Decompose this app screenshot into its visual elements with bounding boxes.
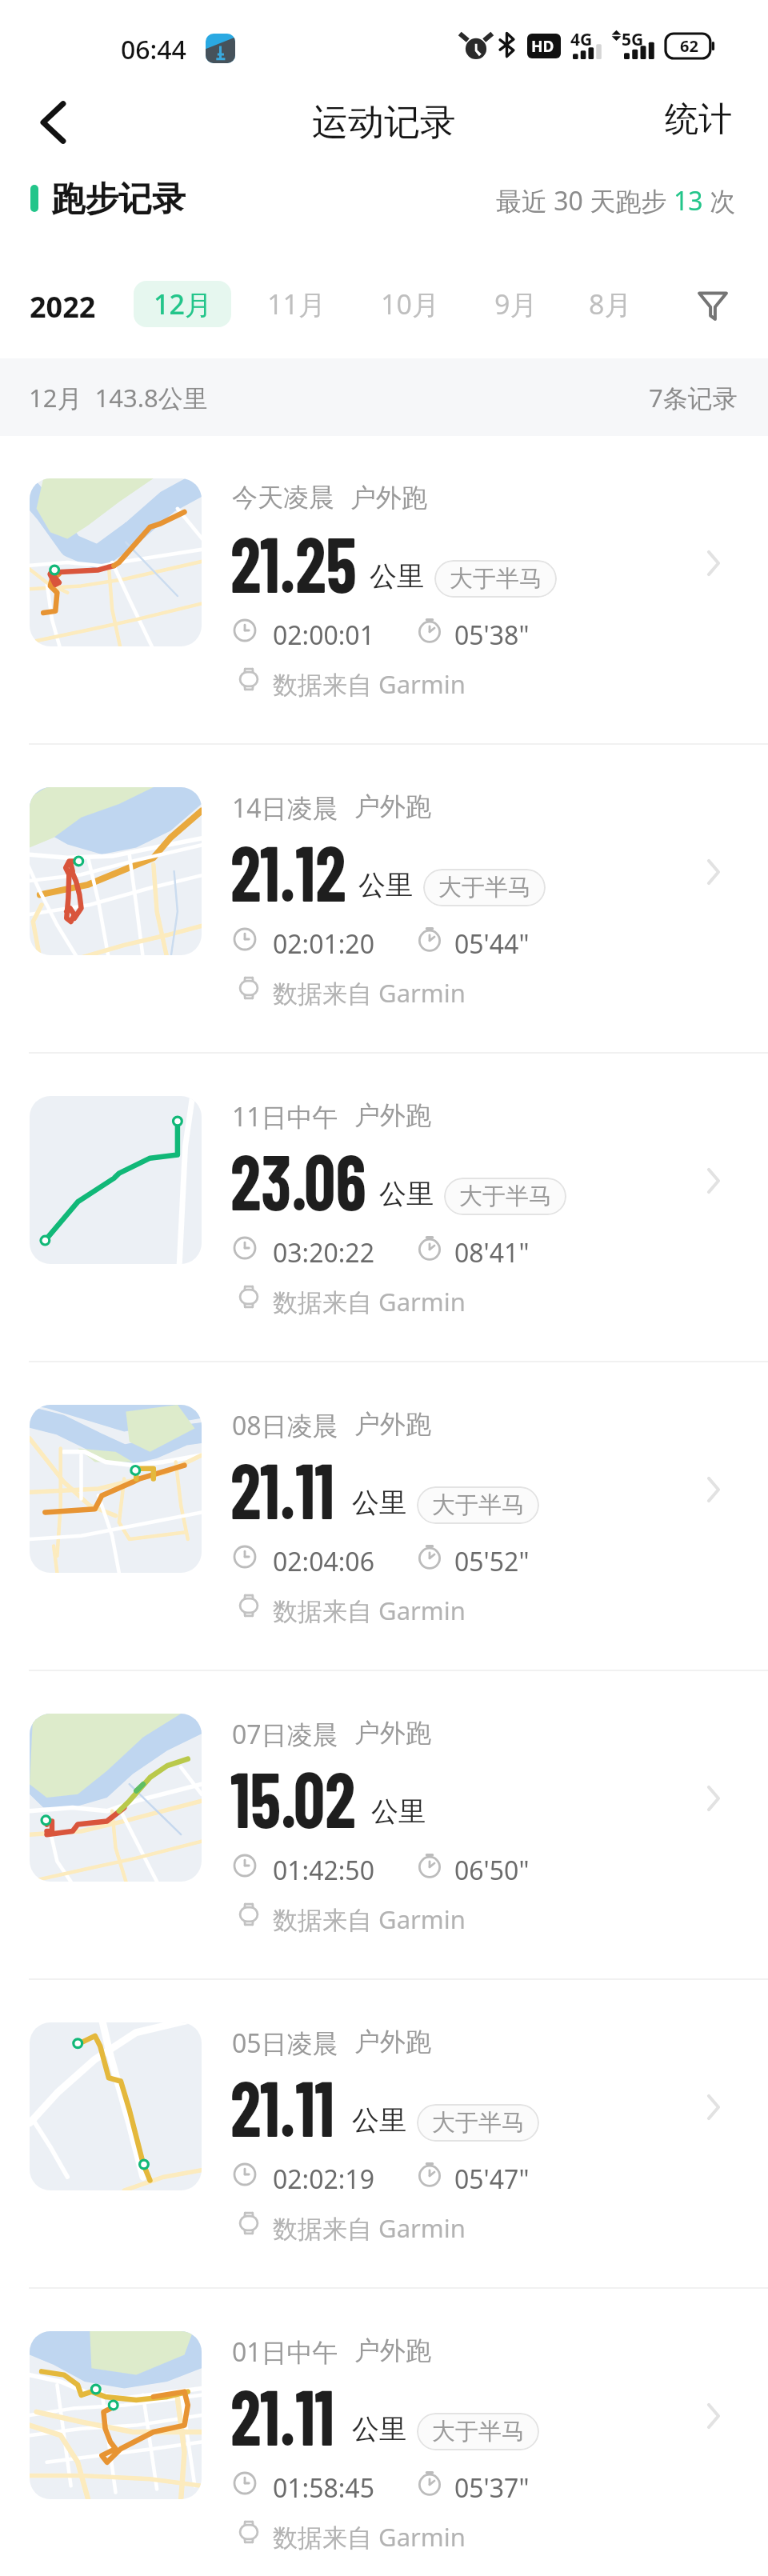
staticText: 数据来自 Garmin [273, 2211, 466, 2245]
staticText: 7条记录 [649, 381, 738, 414]
staticText: 01日中午 [232, 2334, 338, 2370]
staticText: 大于半马 [432, 2108, 525, 2138]
button[interactable]: Filter [690, 283, 735, 328]
button[interactable] [0, 436, 768, 745]
staticText: 大于半马 [432, 1490, 525, 1520]
staticText: 13 [674, 183, 703, 218]
staticText: 01:58:45 [273, 2470, 374, 2506]
staticText: 02:01:20 [273, 926, 374, 962]
staticText: 15.02 [230, 1750, 356, 1844]
staticText: 户外跑 [354, 2334, 431, 2366]
staticText: 数据来自 Garmin [273, 976, 466, 1010]
staticText: 公里 [358, 868, 413, 902]
staticText: 最近 30 天跑步 [496, 183, 674, 218]
button[interactable] [0, 1362, 768, 1671]
staticText: 21.11 [230, 2367, 335, 2462]
staticText: 数据来自 Garmin [273, 1902, 466, 1936]
staticText: 02:04:06 [273, 1544, 374, 1579]
staticText: 今天凌晨 [232, 482, 334, 514]
staticText: 公里 [352, 1486, 406, 1520]
staticText: 08'41" [454, 1235, 530, 1270]
staticText: 4G [570, 28, 593, 51]
staticText: 户外跑 [354, 1408, 431, 1440]
staticText: 21.25 [230, 514, 357, 609]
staticText: 数据来自 Garmin [273, 1594, 466, 1627]
staticText: 数据来自 Garmin [273, 2520, 466, 2554]
staticText: 户外跑 [354, 1099, 431, 1131]
staticText: 21.11 [230, 1441, 335, 1535]
staticText: 统计 [665, 98, 732, 141]
staticText: 01:42:50 [273, 1853, 374, 1888]
staticText: 数据来自 Garmin [273, 667, 466, 701]
button[interactable] [0, 1980, 768, 2289]
staticText: 03:20:22 [273, 1235, 374, 1270]
staticText: 次 [703, 183, 736, 218]
staticText: 户外跑 [354, 2026, 431, 2058]
staticText: 大于半马 [450, 564, 542, 594]
staticText: 05'47" [454, 2162, 530, 2197]
staticText: 05日凌晨 [232, 2026, 338, 2061]
button[interactable]: 8月 [571, 281, 667, 327]
staticText: 运动记录 [312, 100, 456, 146]
staticText: 12月 143.8公里 [29, 381, 208, 414]
button[interactable]: Back [27, 97, 78, 148]
staticText: 07日凌晨 [232, 1717, 338, 1752]
staticText: 05'38" [454, 618, 530, 653]
staticText: 8月 [589, 286, 632, 322]
staticText: 公里 [352, 2103, 406, 2138]
staticText: 62 [680, 35, 698, 57]
staticText: 12月 [154, 286, 212, 322]
staticText: 跑步记录 [51, 178, 186, 221]
staticText: 户外跑 [354, 1717, 431, 1749]
staticText: 21.12 [230, 823, 346, 918]
staticText: 05'44" [454, 926, 530, 962]
button[interactable]: 9月 [477, 281, 573, 327]
button[interactable]: 10月 [363, 281, 459, 327]
button[interactable] [0, 1671, 768, 1980]
staticText: 户外跑 [350, 482, 427, 514]
staticText: 公里 [371, 1794, 426, 1829]
staticText: 14日凌晨 [232, 790, 338, 826]
staticText: 06:44 [121, 32, 186, 67]
staticText: 11日中午 [232, 1099, 338, 1134]
staticText: 23.06 [230, 1132, 366, 1226]
staticText: 11月 [267, 286, 326, 322]
button[interactable] [0, 1054, 768, 1362]
staticText: 公里 [352, 2412, 406, 2446]
button[interactable] [0, 745, 768, 1054]
button[interactable] [0, 2289, 768, 2576]
staticText: 10月 [381, 286, 439, 322]
staticText: 02:00:01 [273, 618, 374, 653]
staticText: 2022 [30, 287, 96, 326]
staticText: 公里 [370, 559, 424, 594]
staticText: 数据来自 Garmin [273, 1285, 466, 1318]
staticText: 5G [622, 28, 644, 51]
staticText: 08日凌晨 [232, 1408, 338, 1443]
staticText: 9月 [494, 286, 538, 322]
staticText: 06'50" [454, 1853, 530, 1888]
staticText: HD [531, 36, 554, 57]
staticText: 05'37" [454, 2470, 530, 2506]
button[interactable]: 11月 [250, 281, 346, 327]
staticText: 21.11 [230, 2058, 335, 2153]
staticText: 大于半马 [438, 873, 531, 902]
staticText: 大于半马 [459, 1182, 552, 1211]
button[interactable]: 统计 [646, 89, 768, 150]
staticText: 大于半马 [432, 2417, 525, 2446]
staticText: 05'52" [454, 1544, 530, 1579]
staticText: 02:02:19 [273, 2162, 374, 2197]
button[interactable]: 12月 [134, 281, 231, 327]
staticText: 户外跑 [354, 790, 431, 822]
staticText: 公里 [379, 1177, 434, 1211]
